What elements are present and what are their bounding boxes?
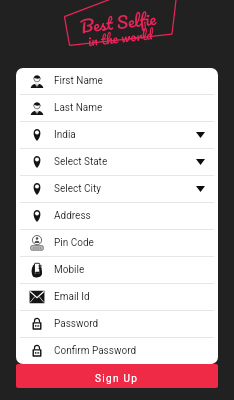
staticText: Address [54,210,91,222]
staticText: Last Name [54,102,103,114]
staticText: Password [54,318,99,330]
staticText: Best Selfie [79,4,157,40]
button[interactable]: Sign Up [16,364,218,388]
button[interactable]: Last Name [16,95,218,121]
staticText: Mobile [54,264,85,276]
button[interactable]: Password [16,311,218,337]
button[interactable]: Select City [16,176,218,202]
staticText: First Name [54,75,103,87]
button[interactable]: Mobile [16,257,218,283]
button[interactable]: Select State [16,149,218,175]
staticText: Pin Code [54,237,94,249]
staticText: in the world [87,22,154,52]
button[interactable]: Address [16,203,218,229]
staticText: India [54,129,76,141]
button[interactable]: Confirm Password [16,338,218,364]
staticText: Email Id [54,291,90,303]
button[interactable]: First Name [16,68,218,94]
button[interactable]: India [16,122,218,148]
staticText: Sign Up [95,373,139,385]
staticText: Confirm Password [54,345,137,357]
button[interactable]: Email Id [16,284,218,310]
staticText: Select City [54,183,101,195]
staticText: Select State [54,156,108,168]
button[interactable]: Pin Code [16,230,218,256]
